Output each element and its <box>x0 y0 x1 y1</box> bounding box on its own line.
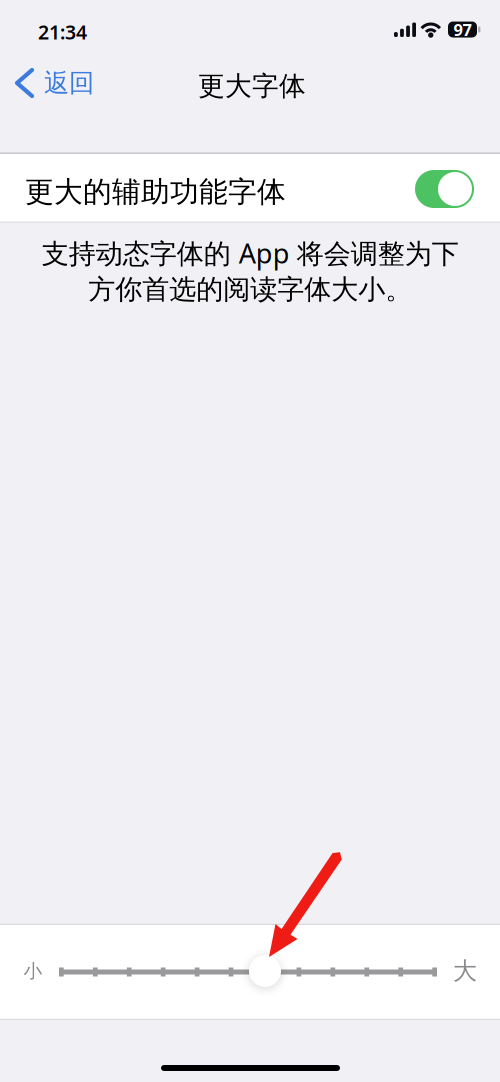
button[interactable]: 返回 <box>0 55 130 111</box>
staticText: 97 <box>453 18 471 40</box>
staticText: 更大字体 <box>198 70 306 102</box>
staticText: 返回 <box>44 67 94 98</box>
staticText: 大 <box>453 956 477 986</box>
staticText: 21:34 <box>38 19 87 45</box>
button[interactable]: 更大的辅助功能字体 <box>0 154 500 222</box>
staticText: 更大的辅助功能字体 <box>25 174 286 210</box>
staticText: 支持动态字体的 App 将会调整为下方你首选的阅读字体大小。 <box>41 235 458 306</box>
staticText: 小 <box>23 959 42 982</box>
